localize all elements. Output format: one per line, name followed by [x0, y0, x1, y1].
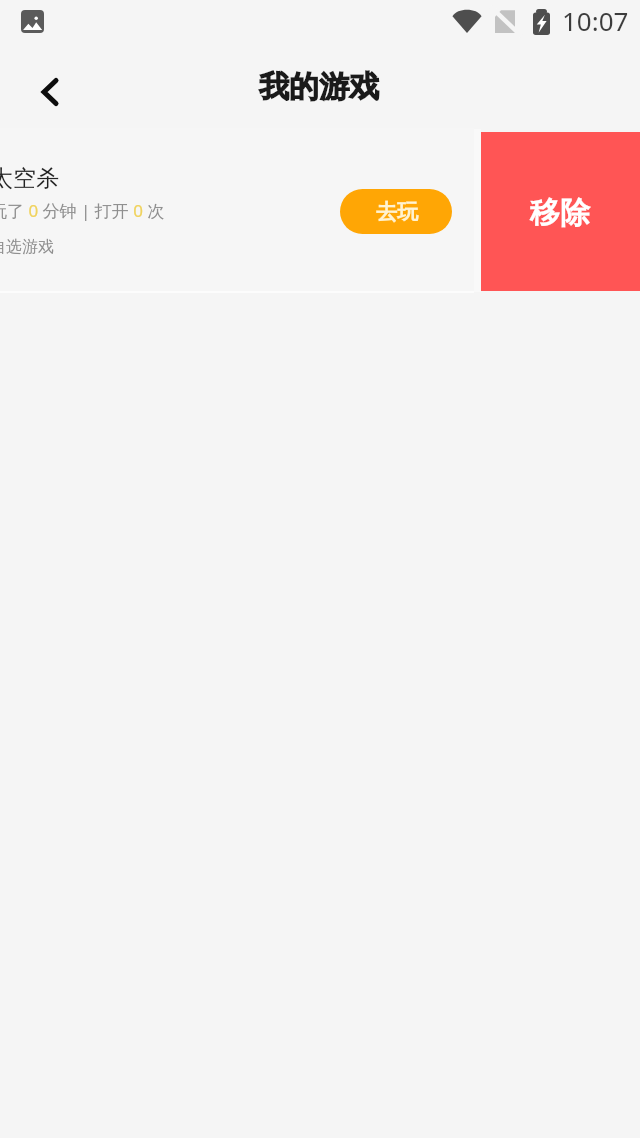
staticText: 移除	[530, 194, 590, 232]
staticText: 自选游戏	[0, 237, 54, 257]
staticText: 太空杀	[0, 164, 59, 193]
staticText: 去玩	[376, 199, 418, 225]
button[interactable]: 去玩	[340, 189, 452, 234]
button[interactable]: 太空杀	[0, 128, 474, 291]
button[interactable]: 移除	[481, 132, 640, 291]
staticText: 我的游戏	[259, 68, 379, 106]
button[interactable]: Back	[26, 69, 72, 115]
staticText: 玩了 0 分钟 | 打开 0 次	[0, 199, 165, 222]
staticText: 10:07	[562, 3, 629, 38]
